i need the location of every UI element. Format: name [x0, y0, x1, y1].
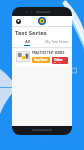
staticText: All	[25, 39, 30, 44]
button[interactable]: Menu	[15, 18, 21, 24]
button[interactable]: Video Series	[52, 57, 68, 64]
button[interactable]: PRACTICE TEST SERIES	[14, 49, 70, 66]
staticText: Buy Now	[34, 58, 48, 62]
staticText: Video Series	[54, 58, 66, 63]
staticText: PRACTICE TEST SERIES	[32, 51, 65, 55]
button[interactable]: Logo	[38, 17, 46, 25]
button[interactable]: All	[12, 38, 42, 47]
button[interactable]: Buy Now	[32, 57, 50, 63]
staticText: My Test Series	[45, 39, 69, 44]
staticText: Test Series	[15, 29, 47, 37]
button[interactable]: My Test Series	[42, 38, 72, 47]
